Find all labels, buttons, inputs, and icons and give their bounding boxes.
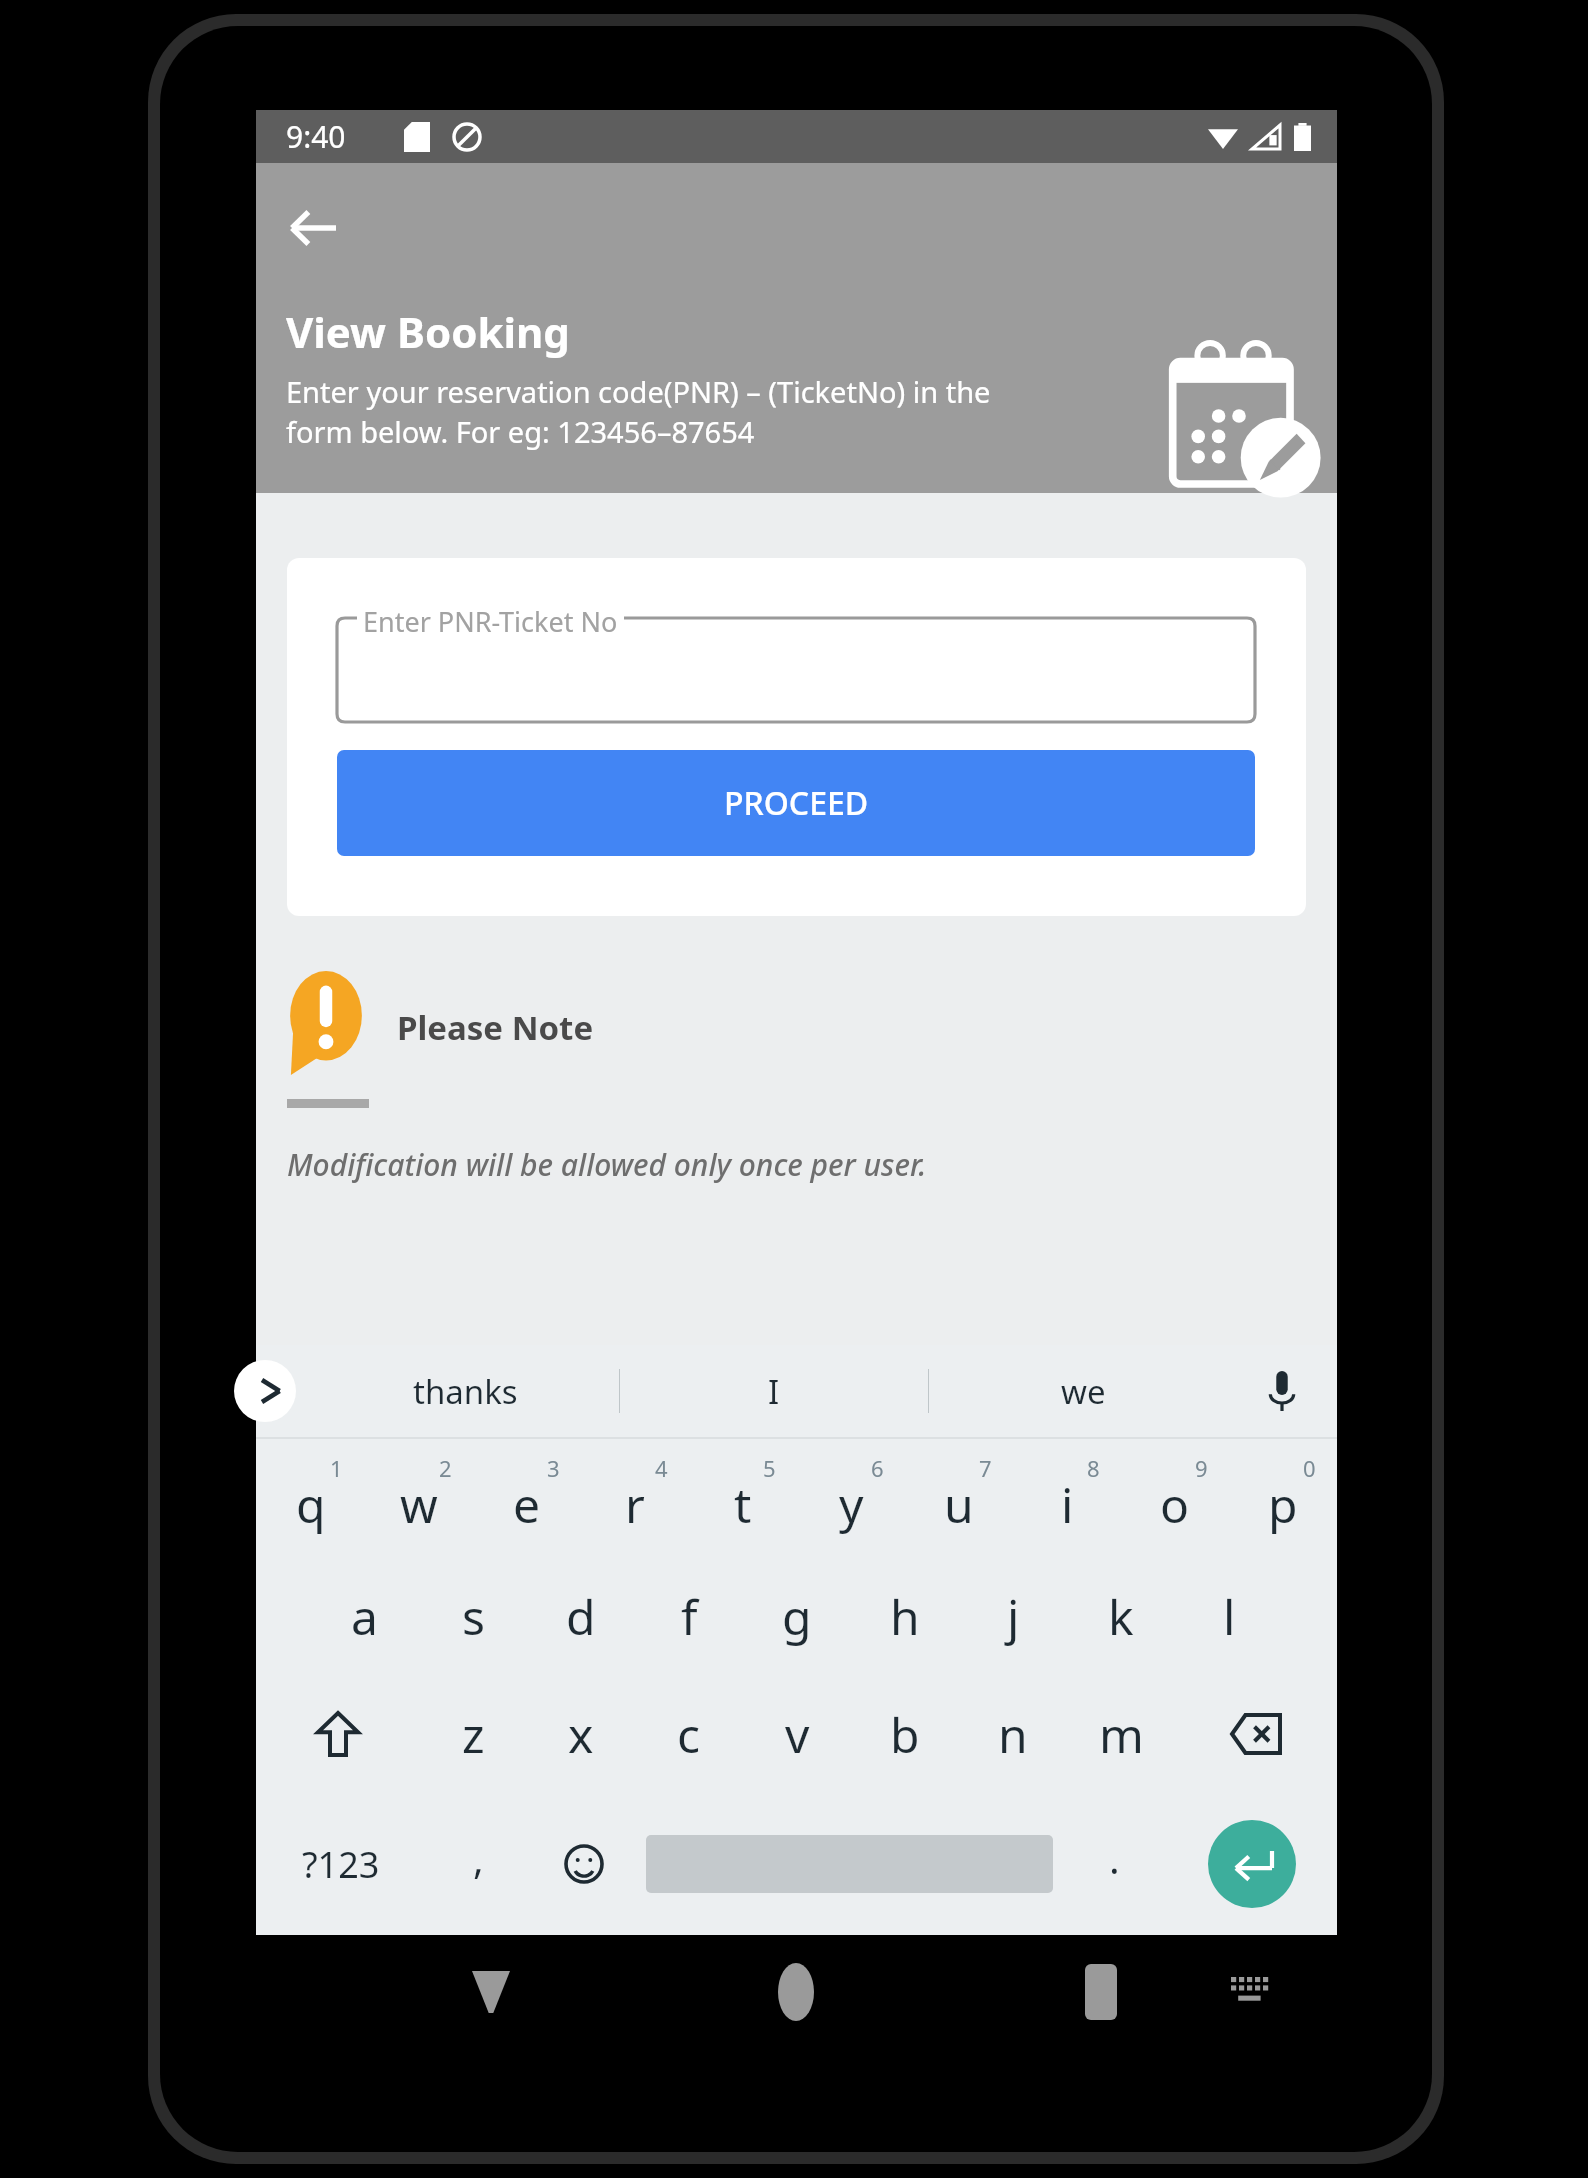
button[interactable]: 3 [473, 1439, 581, 1557]
button[interactable]: Enter [1167, 1793, 1337, 1935]
button[interactable]: Emoji [531, 1793, 637, 1935]
staticText: j [1007, 1584, 1020, 1649]
button[interactable]: . [1061, 1793, 1167, 1935]
staticText: e [513, 1472, 541, 1537]
staticText: k [1108, 1584, 1134, 1649]
button[interactable]: x [527, 1675, 635, 1793]
staticText: Enter PNR-Ticket No [363, 603, 618, 640]
staticText: 4 [655, 1453, 668, 1483]
staticText: b [890, 1702, 920, 1767]
button[interactable]: h [851, 1557, 959, 1675]
button[interactable]: Shift [256, 1675, 419, 1793]
button[interactable]: b [851, 1675, 959, 1793]
staticText: 6 [871, 1453, 884, 1483]
button[interactable]: Back [456, 1957, 526, 2027]
staticText: we [1061, 1369, 1106, 1414]
button[interactable]: j [959, 1557, 1067, 1675]
staticText: 3 [547, 1453, 560, 1483]
button[interactable] [637, 1793, 1061, 1935]
button[interactable]: n [959, 1675, 1067, 1793]
button[interactable]: 9 [1121, 1439, 1229, 1557]
button[interactable]: z [419, 1675, 527, 1793]
staticText: h [890, 1584, 920, 1649]
staticText: a [351, 1584, 378, 1649]
button[interactable]: 4 [581, 1439, 689, 1557]
staticText: 1 [330, 1453, 343, 1483]
button[interactable]: Expand suggestions [234, 1360, 296, 1422]
button[interactable]: we [929, 1345, 1237, 1437]
staticText: s [462, 1584, 485, 1649]
staticText: p [1268, 1472, 1298, 1537]
button[interactable]: Switch keyboard [1216, 1957, 1286, 2027]
button[interactable]: d [527, 1557, 635, 1675]
staticText: , [473, 1831, 484, 1885]
button[interactable]: Recent apps [1066, 1957, 1136, 2027]
button[interactable]: Home [761, 1957, 831, 2027]
staticText: c [677, 1702, 701, 1767]
staticText: r [625, 1472, 645, 1537]
staticText: Please Note [397, 1005, 594, 1050]
staticText: y [839, 1472, 864, 1537]
staticText: 9:40 [286, 116, 346, 157]
staticText: v [785, 1702, 810, 1767]
button[interactable]: s [419, 1557, 527, 1675]
button[interactable]: f [635, 1557, 743, 1675]
staticText: o [1160, 1472, 1190, 1537]
button[interactable]: Enter PNR-Ticket No [337, 618, 1255, 722]
staticText: l [1223, 1584, 1236, 1649]
staticText: m [1099, 1702, 1144, 1767]
button[interactable]: 7 [905, 1439, 1013, 1557]
button[interactable]: 8 [1013, 1439, 1121, 1557]
staticText: 2 [439, 1453, 452, 1483]
button[interactable]: g [743, 1557, 851, 1675]
staticText: PROCEED [724, 781, 869, 825]
button[interactable]: v [743, 1675, 851, 1793]
button[interactable]: ?123 [256, 1793, 425, 1935]
button[interactable]: Backspace [1175, 1675, 1337, 1793]
staticText: 0 [1303, 1453, 1316, 1483]
button[interactable]: PROCEED [337, 750, 1255, 856]
staticText: . [1109, 1831, 1120, 1885]
staticText: t [734, 1472, 752, 1537]
button[interactable]: 6 [797, 1439, 905, 1557]
button[interactable]: , [425, 1793, 531, 1935]
button[interactable]: thanks [312, 1345, 619, 1437]
button[interactable]: c [635, 1675, 743, 1793]
button[interactable]: 2 [365, 1439, 473, 1557]
button[interactable]: 0 [1229, 1439, 1337, 1557]
button[interactable]: I [620, 1345, 928, 1437]
button[interactable]: l [1175, 1557, 1283, 1675]
staticText: thanks [413, 1369, 518, 1414]
staticText: Modification will be allowed only once p… [287, 1144, 927, 1185]
staticText: Enter your reservation code(PNR) – (Tick… [286, 372, 991, 452]
staticText: d [566, 1584, 596, 1649]
button[interactable]: Voice input [1237, 1345, 1327, 1437]
staticText: 7 [979, 1453, 992, 1483]
staticText: 5 [763, 1453, 776, 1483]
staticText: I [768, 1369, 780, 1414]
staticText: x [568, 1702, 594, 1767]
staticText: g [782, 1584, 812, 1649]
staticText: 9 [1195, 1453, 1208, 1483]
button[interactable]: a [310, 1557, 419, 1675]
staticText: q [296, 1472, 326, 1537]
staticText: n [998, 1702, 1028, 1767]
staticText: 8 [1087, 1453, 1100, 1483]
staticText: ?123 [302, 1840, 380, 1889]
button[interactable]: m [1067, 1675, 1175, 1793]
staticText: u [944, 1472, 974, 1537]
button[interactable]: 1 [256, 1439, 365, 1557]
staticText: w [400, 1472, 438, 1537]
staticText: View Booking [286, 303, 570, 360]
staticText: z [462, 1702, 485, 1767]
staticText: i [1061, 1472, 1074, 1537]
button[interactable]: 5 [689, 1439, 797, 1557]
button[interactable]: Back [270, 185, 356, 271]
button[interactable]: k [1067, 1557, 1175, 1675]
staticText: f [681, 1584, 698, 1649]
